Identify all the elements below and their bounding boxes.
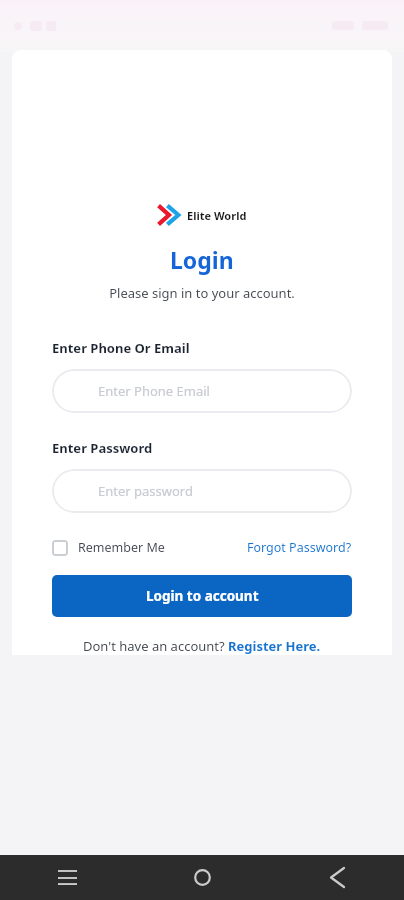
staticText: Elite World xyxy=(187,208,247,223)
button[interactable]: Recent apps xyxy=(43,855,91,900)
staticText: Please sign in to your account. xyxy=(109,284,295,302)
staticText: Enter Phone Email xyxy=(98,382,210,400)
staticText: Enter password xyxy=(98,482,193,500)
staticText: Enter Password xyxy=(52,439,153,457)
button[interactable]: Home xyxy=(178,855,226,900)
staticText: Forgot Password? xyxy=(247,539,352,556)
button[interactable]: Enter Phone Email xyxy=(52,369,352,413)
staticText: Don't have an account? Register Here. xyxy=(83,637,321,655)
button[interactable]: Remember Me xyxy=(52,539,165,556)
staticText: Remember Me xyxy=(78,539,165,556)
button[interactable]: Don't have an account? Register Here. xyxy=(83,637,321,655)
button[interactable]: Login to account xyxy=(52,575,352,617)
staticText: Login to account xyxy=(146,587,259,605)
staticText: Enter Phone Or Email xyxy=(52,339,190,357)
button[interactable]: Back xyxy=(313,855,361,900)
button[interactable]: Forgot Password? xyxy=(247,539,352,556)
button[interactable]: Enter password xyxy=(52,469,352,513)
staticText: Login xyxy=(170,244,234,275)
